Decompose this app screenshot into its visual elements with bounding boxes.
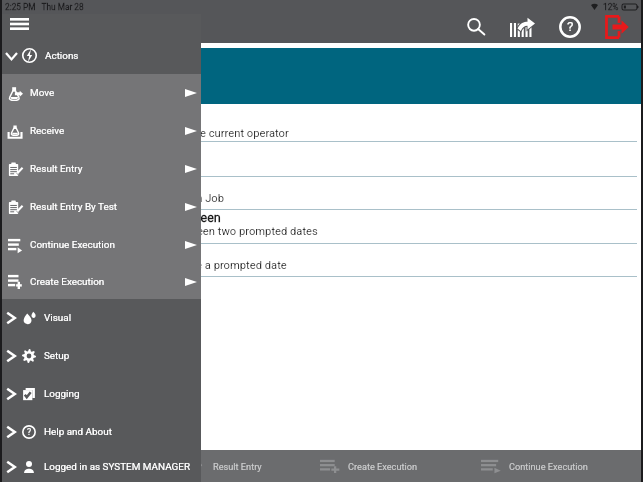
button[interactable]: Result Entry (0, 177, 643, 210)
staticText: Setup (44, 350, 70, 362)
staticText: Logging (44, 388, 80, 400)
button[interactable]: Logging (0, 375, 201, 413)
staticText: Help and About (44, 426, 112, 438)
button[interactable]: Log out (593, 10, 640, 44)
staticText: ? (567, 18, 574, 34)
button[interactable]: Create Execution (0, 244, 643, 277)
button[interactable]: Result Entry (0, 150, 201, 188)
staticText: Result Entry (213, 461, 262, 472)
button[interactable]: Continue Execution (479, 450, 588, 482)
staticText: Create Execution (30, 276, 105, 288)
button[interactable]: Continue Execution (0, 226, 201, 264)
button[interactable]: Receive (0, 142, 643, 177)
staticText: Enter results for a test scheduled betwe… (6, 225, 318, 238)
staticText: Continue Execution (30, 239, 115, 251)
staticText: Result Entry By Test (30, 201, 117, 213)
button[interactable]: Create Execution (0, 264, 201, 299)
button[interactable]: Menu (1, 6, 37, 42)
staticText: Move (6, 112, 37, 127)
button[interactable]: Move (0, 74, 201, 112)
staticText: Continue Execution (509, 461, 588, 472)
staticText: Result Entry By Test Due Date Between (6, 210, 221, 225)
staticText: Visual (44, 312, 72, 324)
button[interactable]: Move (0, 104, 643, 142)
staticText: Move (30, 87, 55, 99)
staticText: Result Entry (30, 163, 83, 175)
button[interactable]: Result Entry (183, 450, 262, 482)
button[interactable]: Receive (0, 112, 201, 150)
staticText: Create executions which are due before a… (6, 259, 287, 272)
staticText: Actions (45, 50, 79, 62)
button[interactable]: Result Entry By Test (0, 188, 201, 226)
staticText: 12% (603, 2, 619, 12)
button[interactable]: Export chart (499, 10, 546, 44)
button[interactable]: Search (452, 10, 499, 44)
staticText: Logged in as SYSTEM MANAGER (44, 461, 190, 473)
staticText: Receive (30, 125, 65, 137)
button[interactable]: Visual (0, 299, 201, 337)
button[interactable]: Result Entry By Test Due Date Between (0, 210, 643, 244)
button[interactable]: Create Execution (318, 450, 418, 482)
button[interactable]: Actions (0, 43, 201, 68)
staticText: Enter results for the samples on a given… (6, 192, 224, 205)
button[interactable]: Setup (0, 337, 201, 375)
button[interactable]: Logged in as SYSTEM MANAGER (0, 451, 201, 482)
button[interactable]: Help (546, 10, 593, 44)
staticText: 2:25 PM Thu Mar 28 (5, 2, 84, 12)
staticText: Receive samples into the laboratory (6, 159, 183, 172)
staticText: Create Execution (6, 244, 100, 259)
staticText: ? (27, 427, 32, 437)
staticText: Move samples to a new location and the c… (6, 127, 289, 140)
staticText: Create Execution (348, 461, 418, 472)
button[interactable]: ? (0, 413, 201, 451)
